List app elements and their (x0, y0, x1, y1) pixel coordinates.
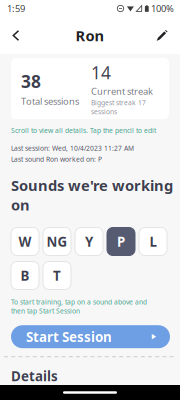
button[interactable]: Back (3, 20, 29, 50)
staticText: Scroll to view all details. Tap the penc… (11, 126, 156, 135)
staticText: Details (11, 367, 58, 385)
button[interactable]: T (43, 261, 71, 289)
button[interactable]: NG (43, 227, 71, 255)
staticText: P (117, 233, 125, 250)
button[interactable]: P (107, 227, 135, 255)
staticText: 38 (21, 70, 41, 93)
staticText: To start training, tap on a sound above … (11, 297, 147, 315)
staticText: Total sessions (21, 95, 79, 107)
staticText: Ron (75, 26, 104, 45)
staticText: T (53, 267, 61, 284)
button[interactable]: W (11, 227, 39, 255)
staticText: Start Session (26, 328, 112, 346)
staticText: NG (46, 233, 67, 250)
staticText: Last session: Wed, 10/4/2023 11:27 AM (11, 144, 134, 153)
staticText: 14 (91, 61, 111, 84)
staticText: Current streak (91, 85, 153, 97)
staticText: W (18, 233, 31, 250)
staticText: Y (85, 233, 93, 250)
staticText: 1:59 (7, 2, 25, 15)
button[interactable]: L (139, 227, 167, 255)
staticText: 100% (151, 2, 174, 15)
button[interactable]: Edit (149, 20, 175, 50)
staticText: Sounds we're working on (11, 176, 173, 215)
staticText: Biggest streak 17 sessions (91, 98, 146, 116)
staticText: Last sound Ron worked on: P (11, 155, 102, 164)
button[interactable]: Y (75, 227, 103, 255)
staticText: L (149, 233, 156, 250)
button[interactable]: B (11, 261, 39, 289)
staticText: B (20, 267, 29, 284)
button[interactable]: Start Session (11, 325, 170, 348)
